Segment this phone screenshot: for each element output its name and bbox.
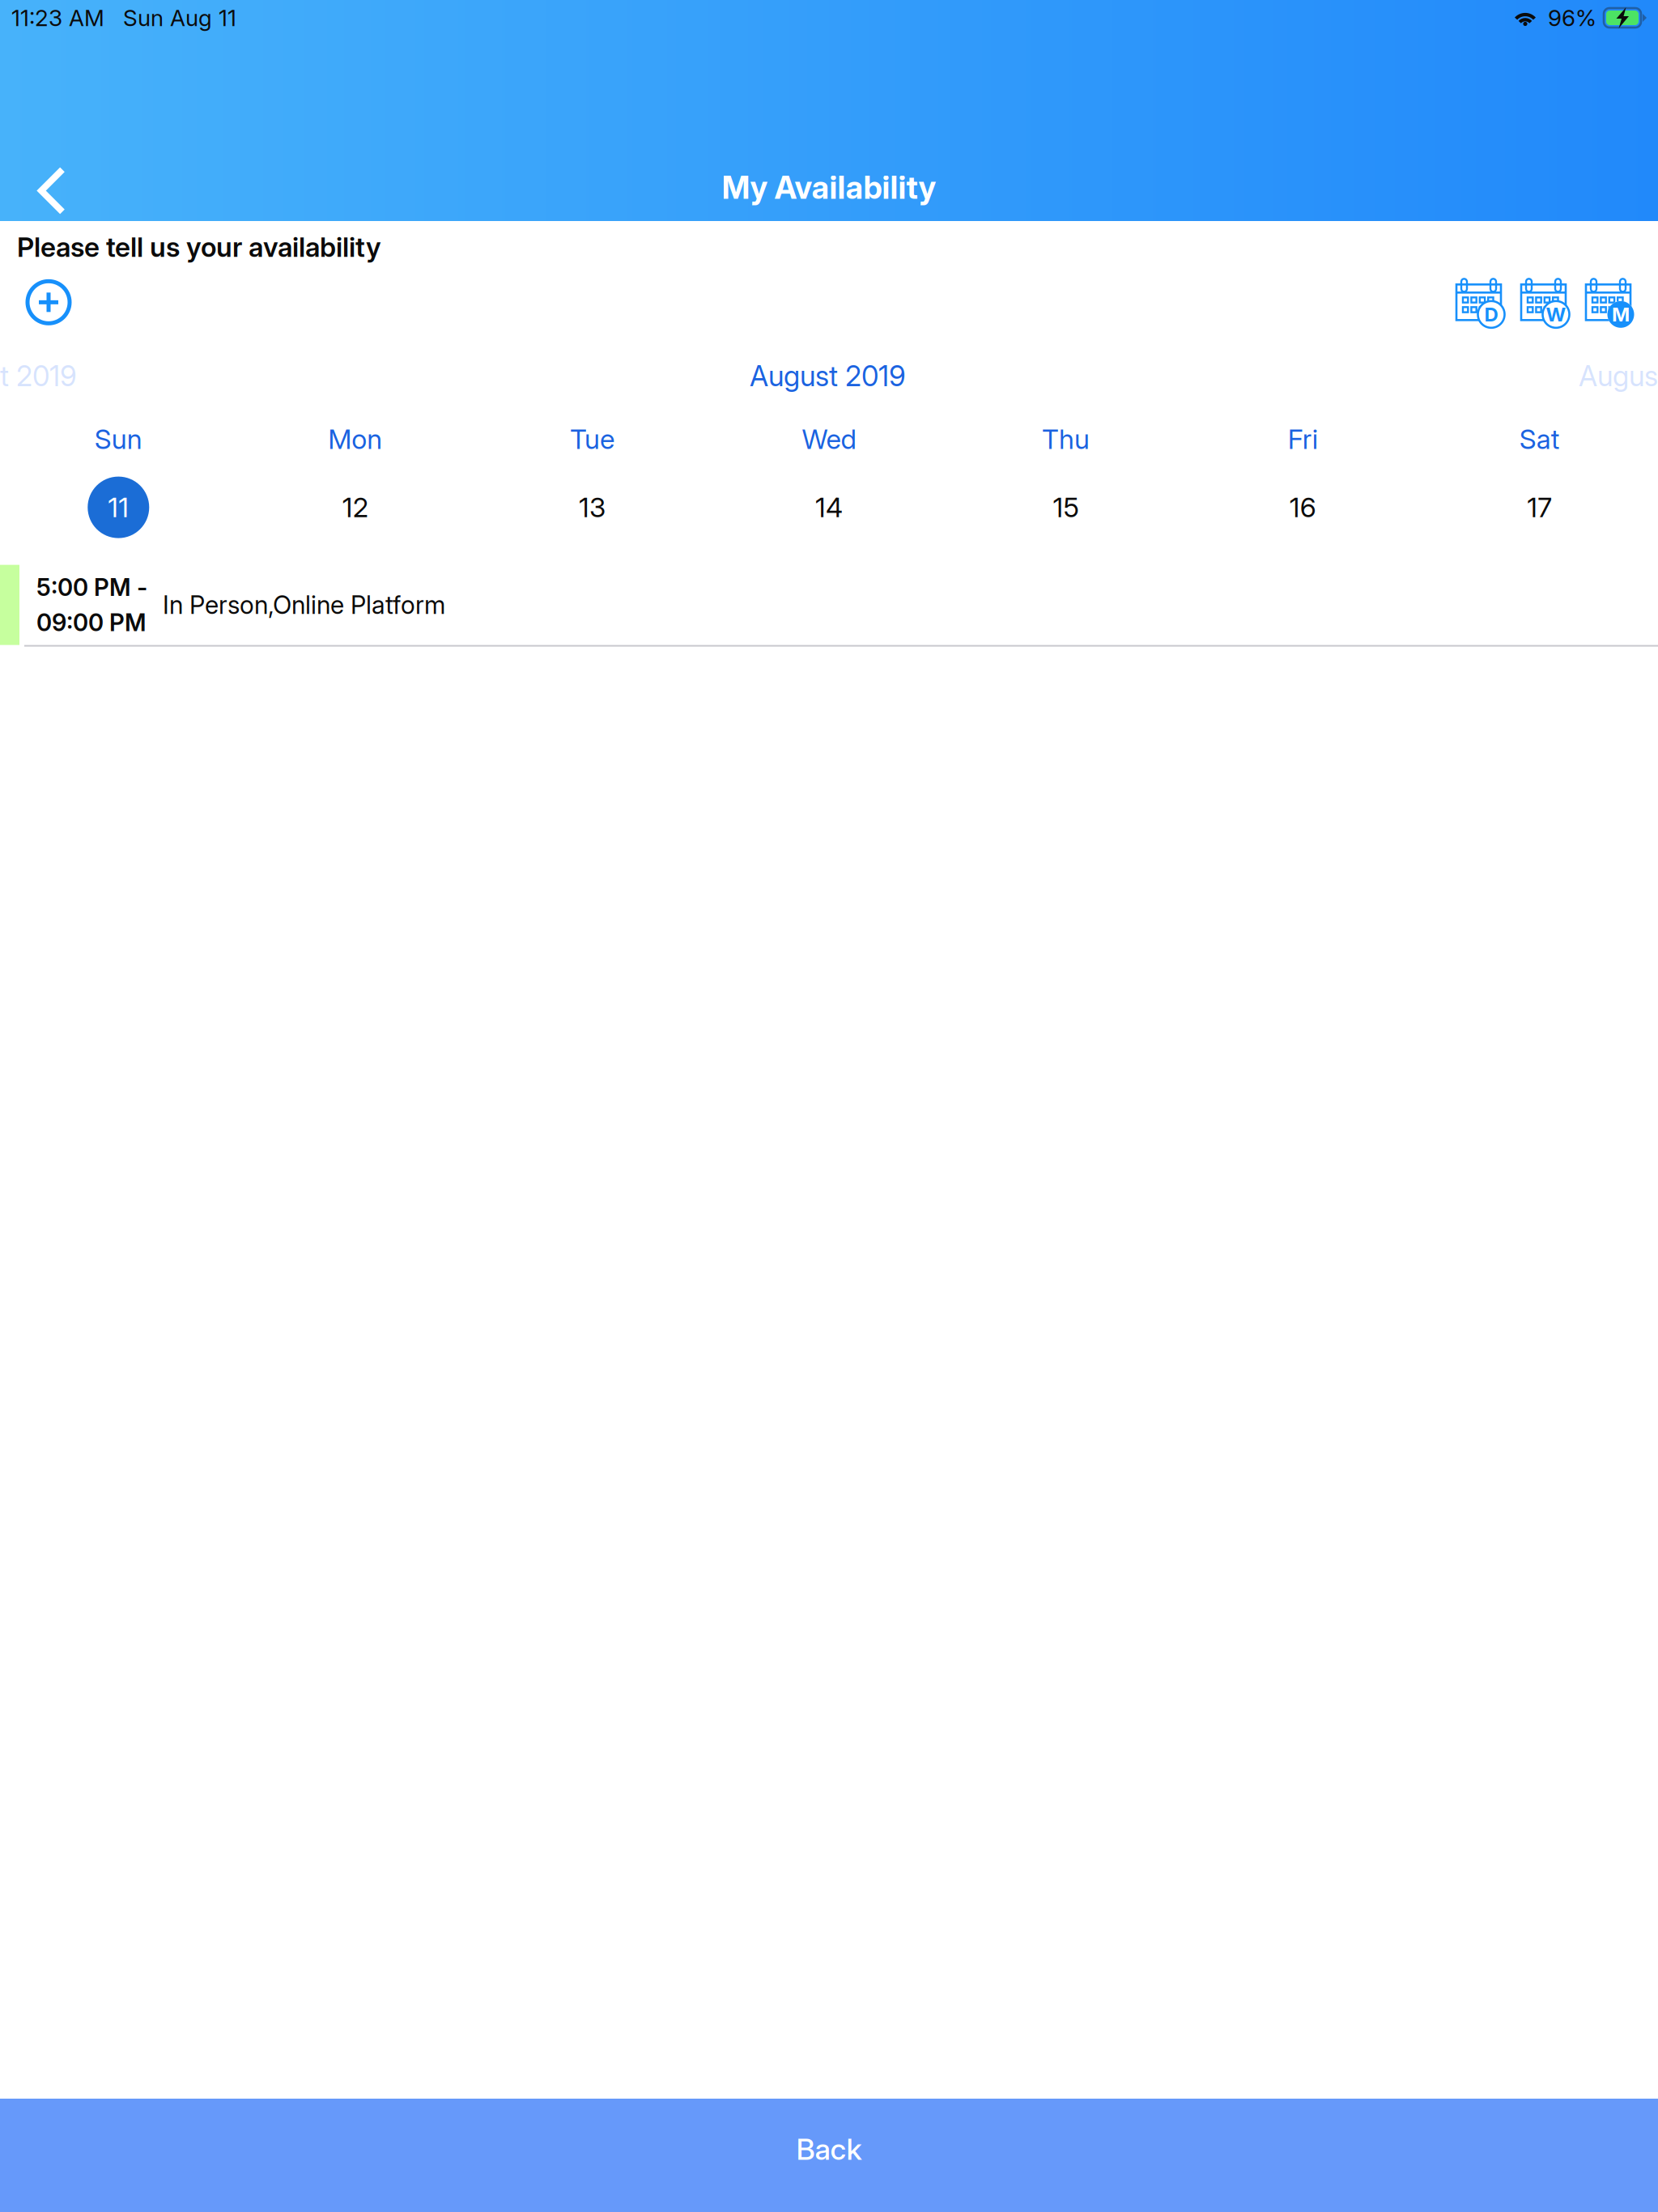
staticText: Back — [796, 2132, 862, 2167]
staticText: Tue — [570, 423, 614, 456]
button[interactable]: Month view — [1585, 278, 1642, 327]
staticText: Augus — [1579, 359, 1658, 393]
button[interactable]: Back — [0, 2099, 1658, 2212]
button[interactable]: Back — [0, 155, 100, 219]
staticText: 96% — [1548, 4, 1596, 32]
staticText: t 2019 — [0, 359, 77, 393]
staticText: Sun Aug 11 — [123, 4, 236, 32]
staticText: 14 — [815, 491, 843, 524]
staticText: In Person,Online Platform — [163, 590, 445, 620]
staticText: W — [1546, 303, 1566, 326]
button[interactable]: Add availability — [17, 278, 80, 327]
staticText: Mon — [328, 423, 382, 456]
button[interactable]: 14 — [711, 477, 947, 538]
staticText: 09:00 PM — [36, 608, 147, 637]
staticText: My Availability — [722, 168, 936, 206]
button[interactable]: Day view — [1456, 278, 1512, 327]
staticText: 15 — [1053, 491, 1079, 524]
staticText: 17 — [1527, 491, 1552, 524]
staticText: August 2019 — [750, 359, 906, 393]
button[interactable]: 17 — [1421, 477, 1658, 538]
button[interactable]: 12 — [237, 477, 474, 538]
staticText: 16 — [1289, 491, 1316, 524]
staticText: Fri — [1288, 423, 1318, 456]
button[interactable]: 13 — [474, 477, 711, 538]
button[interactable]: 15 — [947, 477, 1184, 538]
staticText: Sun — [95, 423, 142, 456]
button[interactable]: 5:00 PM - — [0, 565, 1658, 647]
staticText: Thu — [1042, 423, 1090, 456]
staticText: 11 — [108, 491, 129, 524]
staticText: Sat — [1519, 423, 1560, 456]
staticText: Please tell us your availability — [17, 231, 381, 263]
staticText: D — [1484, 303, 1498, 326]
button[interactable]: Week view — [1520, 278, 1577, 327]
staticText: 12 — [342, 491, 368, 524]
button[interactable]: 16 — [1184, 477, 1421, 538]
button[interactable]: 11 — [0, 477, 237, 538]
staticText: M — [1612, 303, 1630, 326]
staticText: Wed — [802, 423, 856, 456]
staticText: 11:23 AM — [11, 4, 104, 32]
staticText: 13 — [579, 491, 605, 524]
staticText: 5:00 PM - — [36, 573, 147, 602]
